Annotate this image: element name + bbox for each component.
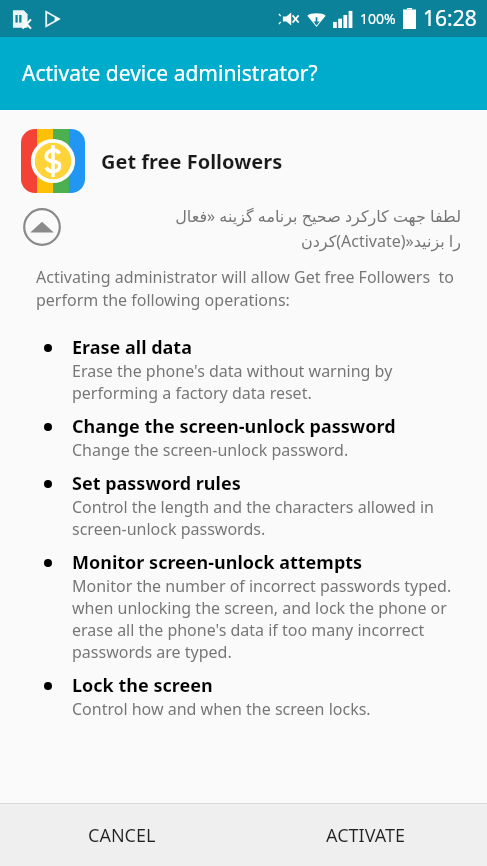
staticText: Erase all data [72, 335, 461, 360]
staticText: Change the screen-unlock password [72, 414, 461, 439]
staticText: Erase the phone's data without warning b… [72, 360, 461, 404]
staticText: Get free Followers [101, 148, 283, 175]
staticText: ACTIVATE [326, 823, 405, 848]
button[interactable]: Erase all data [0, 325, 487, 404]
button[interactable]: CANCEL [0, 804, 243, 866]
staticText: Control the length and the characters al… [72, 496, 461, 540]
button[interactable]: Monitor screen-unlock attempts [0, 540, 487, 663]
staticText: Control how and when the screen locks. [72, 698, 461, 720]
staticText: Set password rules [72, 471, 461, 496]
staticText: Lock the screen [72, 673, 461, 698]
staticText: Monitor the number of incorrect password… [72, 575, 461, 663]
staticText: 16:28 [423, 4, 477, 33]
button[interactable]: Collapse details [20, 205, 64, 249]
staticText: Change the screen-unlock password. [72, 439, 461, 461]
button[interactable]: ACTIVATE [243, 804, 487, 866]
staticText: Activate device administrator? [22, 59, 318, 88]
staticText: Monitor screen-unlock attempts [72, 550, 461, 575]
staticText: لطفا جهت کارکرد صحیح برنامه گزینه «فعال … [72, 205, 461, 252]
button[interactable]: Change the screen-unlock password [0, 404, 487, 461]
staticText: Activating administrator will allow Get … [36, 266, 457, 311]
staticText: 100% [360, 9, 396, 28]
button[interactable]: Lock the screen [0, 663, 487, 720]
staticText: CANCEL [88, 823, 156, 848]
button[interactable]: Set password rules [0, 461, 487, 540]
